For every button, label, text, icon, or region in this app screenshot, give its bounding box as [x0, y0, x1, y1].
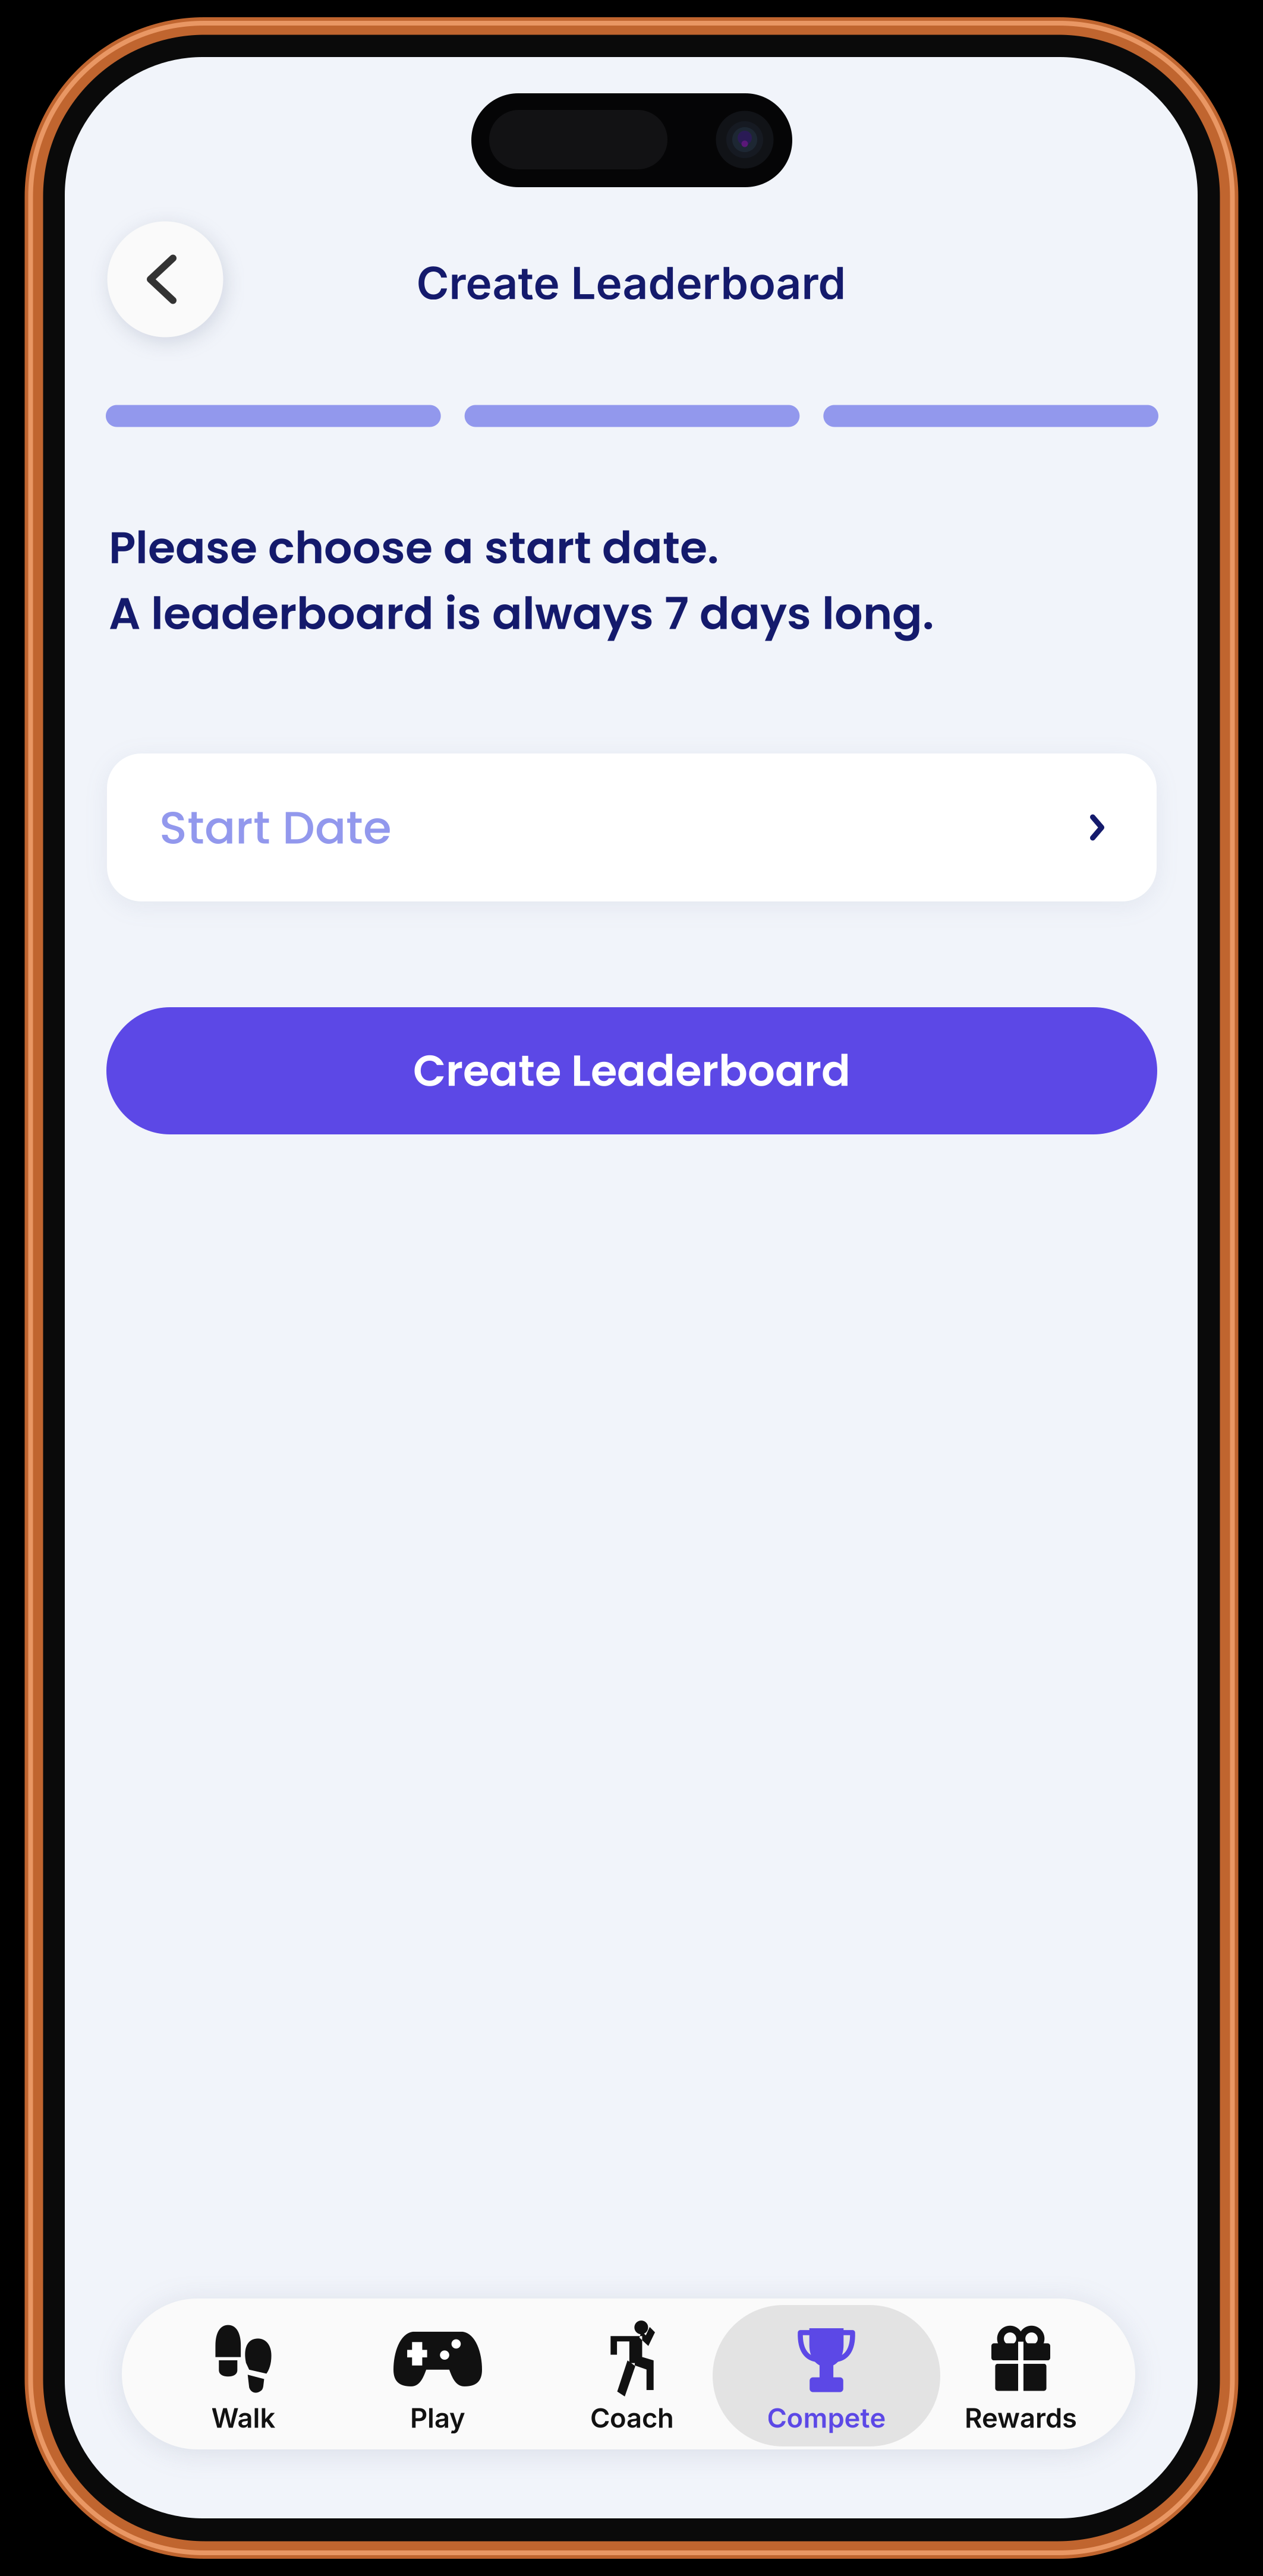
- staticText: Coach: [590, 2402, 674, 2434]
- button[interactable]: Rewards: [907, 2305, 1135, 2446]
- button[interactable]: Walk: [130, 2305, 357, 2446]
- staticText: A leaderboard is always 7 days long.: [109, 582, 934, 644]
- staticText: Start Date: [159, 795, 392, 860]
- staticText: Walk: [211, 2402, 275, 2434]
- staticText: Compete: [767, 2402, 886, 2434]
- staticText: Create Leaderboard: [413, 1041, 851, 1101]
- button[interactable]: Create Leaderboard: [106, 1007, 1157, 1134]
- staticText: Play: [410, 2402, 465, 2434]
- button[interactable]: Play: [324, 2305, 552, 2446]
- button[interactable]: Start Date: [107, 753, 1157, 901]
- staticText: Create Leaderboard: [416, 256, 846, 310]
- staticText: Rewards: [965, 2402, 1077, 2434]
- staticText: Please choose a start date.: [109, 517, 719, 579]
- button[interactable]: Compete: [713, 2305, 940, 2446]
- button[interactable]: Back: [107, 221, 223, 337]
- button[interactable]: Coach: [518, 2305, 746, 2446]
